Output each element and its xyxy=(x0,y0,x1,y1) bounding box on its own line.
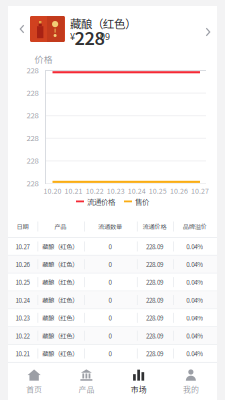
staticText: 10.26 xyxy=(170,185,188,196)
staticText: 藏酿（红色） xyxy=(42,313,78,322)
staticText: 0 xyxy=(108,278,111,287)
button[interactable]: 产品 xyxy=(60,362,112,400)
staticText: 流通价格 xyxy=(142,222,166,231)
staticText: 10.23 xyxy=(15,313,29,322)
staticText: 228 xyxy=(26,109,38,121)
staticText: .09 xyxy=(97,29,110,43)
staticText: 藏酿（红色） xyxy=(42,242,78,251)
button[interactable]: 市场 xyxy=(112,362,165,400)
staticText: 藏酿（红色） xyxy=(42,331,78,340)
staticText: 0.04% xyxy=(186,313,203,322)
staticText: 0 xyxy=(108,242,111,251)
staticText: 藏酿（红色） xyxy=(42,349,78,358)
staticText: ¥ xyxy=(70,29,75,43)
staticText: 10.25 xyxy=(149,185,167,196)
staticText: 0 xyxy=(108,331,111,340)
staticText: 10.27 xyxy=(191,185,209,196)
staticText: 0 xyxy=(108,349,111,358)
staticText: 10.23 xyxy=(107,185,125,196)
staticText: 0 xyxy=(108,260,111,269)
staticText: 藏酿（红色） xyxy=(42,260,78,269)
staticText: 228.09 xyxy=(146,295,163,304)
staticText: 流通价格 xyxy=(87,196,115,207)
button[interactable]: 上一个 xyxy=(14,19,30,39)
staticText: 228.09 xyxy=(146,260,163,269)
staticText: 产品 xyxy=(78,383,94,395)
staticText: 10.24 xyxy=(15,295,29,304)
staticText: 0.04% xyxy=(186,242,203,251)
staticText: 流通数量 xyxy=(98,222,122,231)
staticText: 228.09 xyxy=(146,278,163,287)
staticText: 228 xyxy=(74,24,104,50)
staticText: 228 xyxy=(26,87,38,98)
button[interactable]: 我的 xyxy=(165,362,217,400)
staticText: 0 xyxy=(108,313,111,322)
staticText: 10.26 xyxy=(15,260,29,269)
staticText: 10.22 xyxy=(86,185,104,196)
staticText: 10.20 xyxy=(43,185,61,196)
staticText: 藏酿（红色） xyxy=(70,15,136,32)
staticText: 品牌溢价 xyxy=(183,222,207,231)
staticText: 0.04% xyxy=(186,331,203,340)
staticText: 10.24 xyxy=(128,185,146,196)
staticText: 我的 xyxy=(183,383,199,395)
staticText: 228 xyxy=(26,64,38,75)
staticText: 0 xyxy=(108,295,111,304)
staticText: 0.04% xyxy=(186,278,203,287)
staticText: 0.04% xyxy=(186,295,203,304)
staticText: 10.27 xyxy=(15,242,29,251)
staticText: 价格 xyxy=(34,52,52,65)
staticText: 藏酿（红色） xyxy=(42,278,78,287)
staticText: 10.21 xyxy=(65,185,83,196)
staticText: 228.09 xyxy=(146,349,163,358)
staticText: 228.09 xyxy=(146,242,163,251)
button[interactable]: 下一个 xyxy=(200,22,216,42)
staticText: 228.09 xyxy=(146,313,163,322)
staticText: 228 xyxy=(26,155,38,166)
staticText: 首页 xyxy=(26,383,42,395)
staticText: 10.21 xyxy=(15,349,29,358)
staticText: 10.22 xyxy=(15,331,29,340)
staticText: 228.09 xyxy=(146,331,163,340)
staticText: 售价 xyxy=(135,196,149,207)
staticText: 10.25 xyxy=(15,278,29,287)
staticText: 228 xyxy=(26,177,38,188)
staticText: 市场 xyxy=(131,383,147,395)
staticText: 产品 xyxy=(54,222,66,231)
staticText: 0.04% xyxy=(186,260,203,269)
staticText: 藏酿（红色） xyxy=(42,295,78,304)
staticText: 日期 xyxy=(16,222,28,231)
button[interactable]: 首页 xyxy=(8,362,60,400)
staticText: 0.04% xyxy=(186,349,203,358)
staticText: 228 xyxy=(26,132,38,143)
